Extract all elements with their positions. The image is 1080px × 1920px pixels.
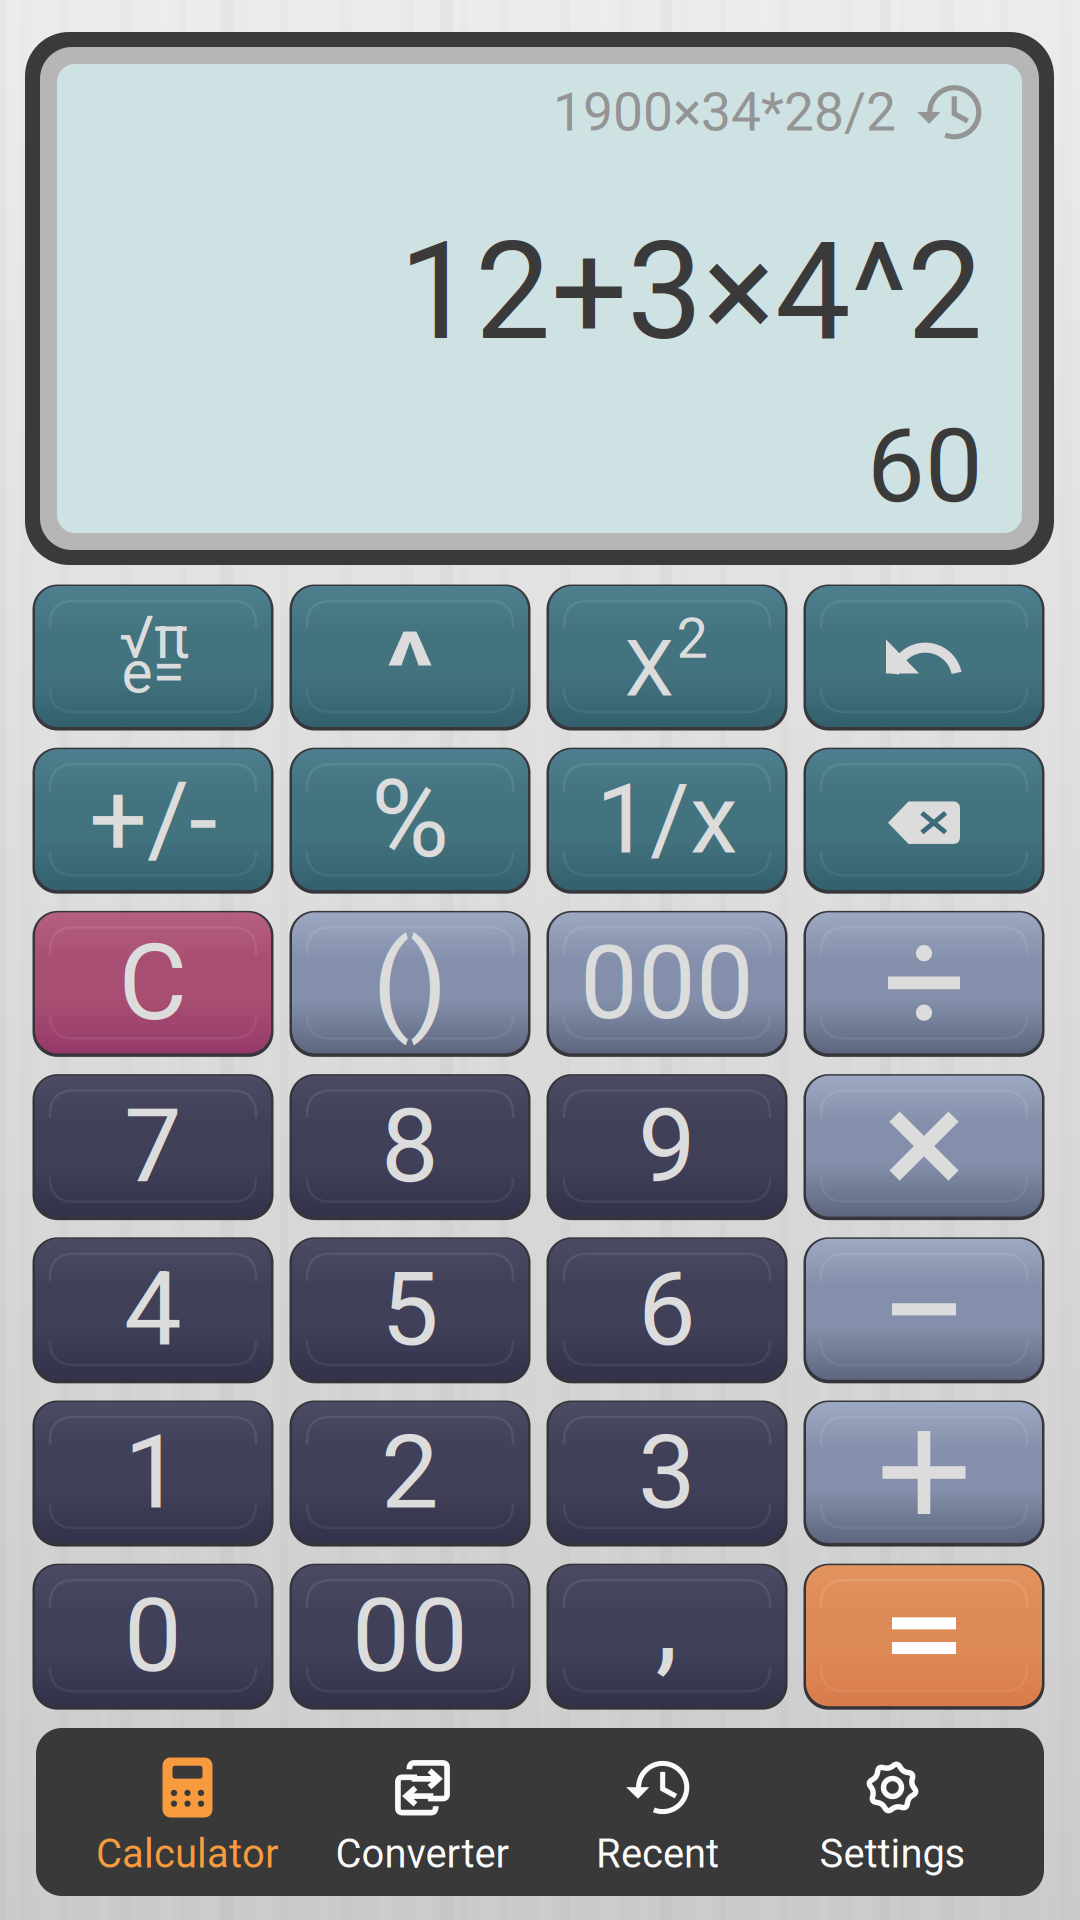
staticText: 6: [638, 1249, 696, 1369]
button[interactable]: Converter: [305, 1728, 540, 1895]
staticText: e=: [121, 638, 184, 707]
button[interactable]: [803, 1562, 1045, 1709]
button[interactable]: 00: [289, 1562, 531, 1709]
button[interactable]: 4: [32, 1236, 274, 1383]
button[interactable]: 6: [546, 1236, 788, 1383]
button[interactable]: 8: [289, 1073, 531, 1220]
staticText: 1: [124, 1412, 182, 1533]
button[interactable]: Calculator: [70, 1728, 305, 1895]
staticText: 0: [124, 1575, 182, 1696]
button[interactable]: 5: [289, 1236, 531, 1383]
button[interactable]: 9: [546, 1073, 788, 1220]
staticText: X: [624, 622, 673, 715]
staticText: 00: [352, 1575, 468, 1696]
button[interactable]: 3: [546, 1399, 788, 1546]
button[interactable]: Recent: [540, 1728, 775, 1895]
button[interactable]: [289, 583, 531, 730]
staticText: 2: [381, 1412, 439, 1533]
button[interactable]: [803, 1236, 1045, 1383]
staticText: √π: [119, 603, 189, 672]
button[interactable]: +/-: [32, 746, 274, 893]
staticText: Converter: [335, 1830, 509, 1877]
button[interactable]: Settings: [775, 1728, 1010, 1895]
button[interactable]: C: [32, 909, 274, 1056]
staticText: 9: [638, 1086, 696, 1206]
staticText: 4: [124, 1249, 182, 1369]
staticText: 5: [381, 1249, 439, 1369]
staticText: 7: [124, 1086, 182, 1206]
button[interactable]: ,: [546, 1562, 788, 1709]
staticText: C: [118, 921, 187, 1045]
staticText: ,: [655, 1553, 678, 1688]
staticText: Calculator: [96, 1830, 279, 1877]
staticText: 2: [676, 606, 707, 671]
button[interactable]: [803, 1073, 1045, 1220]
button[interactable]: 1/x: [546, 746, 788, 893]
staticText: %: [371, 757, 449, 882]
staticText: Settings: [819, 1830, 965, 1877]
staticText: Recent: [596, 1830, 719, 1877]
button[interactable]: 2: [289, 1399, 531, 1546]
staticText: 8: [381, 1086, 439, 1206]
button[interactable]: √π: [32, 583, 274, 730]
button[interactable]: [803, 746, 1045, 893]
staticText: 12+3×4^2: [399, 213, 983, 371]
staticText: 000: [580, 923, 754, 1043]
button[interactable]: [803, 1399, 1045, 1546]
button[interactable]: 7: [32, 1073, 274, 1220]
button[interactable]: [803, 583, 1045, 730]
button[interactable]: [803, 909, 1045, 1056]
button[interactable]: 000: [546, 909, 788, 1056]
staticText: (): [372, 919, 447, 1047]
button[interactable]: X: [546, 583, 788, 730]
staticText: +/-: [89, 759, 217, 880]
staticText: 60: [867, 406, 983, 526]
staticText: 3: [638, 1412, 696, 1533]
button[interactable]: (): [289, 909, 531, 1056]
button[interactable]: %: [289, 746, 531, 893]
button[interactable]: 0: [32, 1562, 274, 1709]
staticText: 1/x: [596, 763, 738, 876]
staticText: 1900×34*28/2: [553, 81, 896, 143]
button[interactable]: 1: [32, 1399, 274, 1546]
